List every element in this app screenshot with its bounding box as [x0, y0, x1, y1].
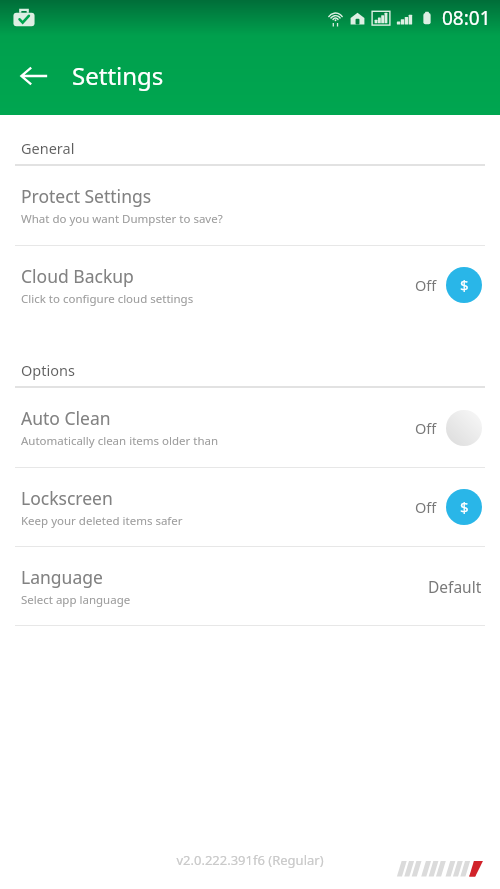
- staticText: Select app language: [21, 592, 131, 608]
- button[interactable]: Cloud Backup: [0, 246, 500, 324]
- staticText: General: [21, 138, 75, 158]
- staticText: 08:01: [442, 5, 491, 31]
- staticText: Settings: [72, 59, 164, 92]
- staticText: Default: [428, 576, 482, 597]
- staticText: Cloud Backup: [21, 264, 134, 288]
- button[interactable]: Lockscreen: [0, 468, 500, 546]
- button[interactable]: Back: [11, 53, 57, 99]
- staticText: Off: [415, 497, 437, 517]
- staticText: Auto Clean: [21, 406, 111, 430]
- staticText: $: [460, 497, 469, 517]
- button[interactable]: Language: [0, 547, 500, 625]
- staticText: Lockscreen: [21, 486, 113, 510]
- staticText: Automatically clean items older than: [21, 433, 219, 449]
- button[interactable]: Protect Settings: [0, 166, 500, 245]
- staticText: Language: [21, 565, 103, 589]
- staticText: Click to configure cloud settings: [21, 291, 194, 307]
- staticText: Protect Settings: [21, 184, 152, 208]
- staticText: Off: [415, 418, 437, 438]
- staticText: Keep your deleted items safer: [21, 513, 183, 529]
- other: Work profile: [13, 7, 35, 29]
- button[interactable]: Auto Clean: [0, 388, 500, 467]
- staticText: $: [460, 275, 469, 295]
- staticText: Options: [21, 360, 75, 380]
- staticText: v2.0.222.391f6 (Regular): [0, 851, 500, 869]
- staticText: What do you want Dumpster to save?: [21, 211, 223, 227]
- staticText: Off: [415, 275, 437, 295]
